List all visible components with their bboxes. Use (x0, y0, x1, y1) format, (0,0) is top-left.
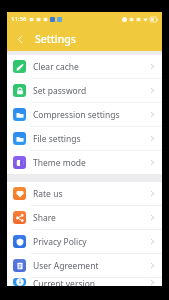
staticText: Rate us (33, 188, 149, 200)
staticText: Privacy Policy (33, 236, 149, 248)
staticText: Theme mode (33, 157, 149, 169)
button[interactable]: Set password (7, 79, 162, 102)
staticText: Set password (33, 85, 149, 97)
button[interactable]: Privacy Policy (7, 230, 162, 253)
button[interactable]: Theme mode (7, 151, 162, 174)
button[interactable]: Compression settings (7, 103, 162, 126)
button[interactable]: User Agreement (7, 254, 162, 277)
staticText: File settings (33, 133, 149, 145)
staticText: Clear cache (33, 61, 149, 73)
staticText: 11:56 (11, 15, 27, 23)
staticText: Compression settings (33, 109, 149, 121)
staticText: Current version (33, 278, 149, 286)
staticText: Settings (35, 32, 76, 46)
button[interactable]: Clear cache (7, 55, 162, 78)
staticText: User Agreement (33, 260, 149, 272)
button[interactable]: Share (7, 206, 162, 229)
button[interactable]: Rate us (7, 182, 162, 205)
button[interactable]: Back (10, 29, 30, 49)
button[interactable]: File settings (7, 127, 162, 150)
staticText: Share (33, 212, 149, 224)
button[interactable]: Current version (7, 278, 162, 286)
